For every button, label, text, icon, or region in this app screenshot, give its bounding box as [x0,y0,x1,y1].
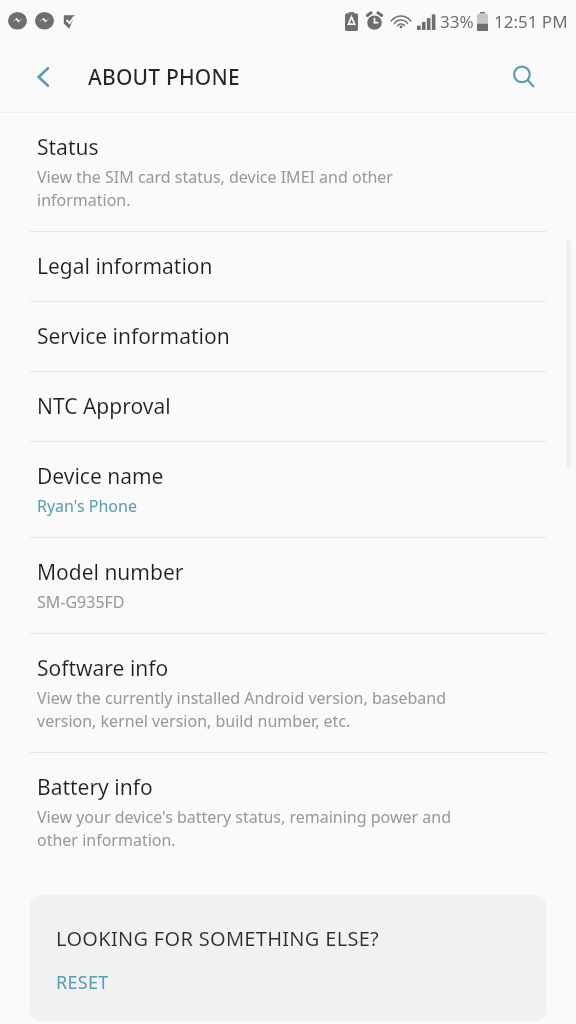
staticText: 12:51 PM [494,10,568,33]
staticText: Device name [37,462,164,491]
button[interactable]: Device name [0,442,576,537]
staticText: Legal information [37,252,213,281]
staticText: NTC Approval [37,392,171,421]
staticText: Status [37,133,99,162]
staticText: View your device's battery status, remai… [37,806,452,851]
staticText: Software info [37,654,169,683]
button[interactable]: RESET [56,970,109,995]
staticText: Service information [37,322,230,351]
staticText: Battery info [37,773,153,802]
button[interactable]: Service information [0,302,576,371]
staticText: ABOUT PHONE [88,63,240,92]
staticText: Ryan's Phone [37,495,137,517]
staticText: Model number [37,558,184,587]
staticText: View the SIM card status, device IMEI an… [37,166,393,211]
button[interactable]: Model number [0,538,576,633]
staticText: View the currently installed Android ver… [37,687,446,732]
button[interactable]: Search [500,53,548,101]
button[interactable]: Back [20,53,68,101]
button[interactable]: Battery info [0,753,576,871]
button[interactable]: Software info [0,634,576,752]
staticText: 33% [440,10,474,33]
button[interactable]: Status [0,113,576,231]
button[interactable]: NTC Approval [0,372,576,441]
staticText: LOOKING FOR SOMETHING ELSE? [56,925,380,952]
button[interactable]: Legal information [0,232,576,301]
staticText: RESET [56,970,109,995]
staticText: SM-G935FD [37,591,125,613]
